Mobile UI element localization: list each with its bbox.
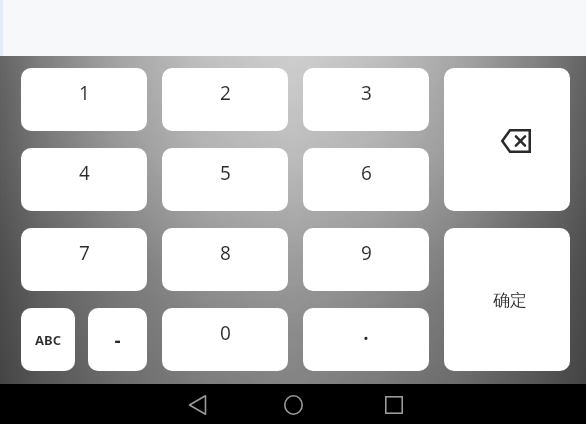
button[interactable]: 2	[162, 68, 288, 131]
button[interactable]: Back	[177, 393, 217, 417]
button[interactable]: 确定	[444, 228, 570, 371]
staticText: 4	[79, 160, 90, 186]
staticText: .	[363, 320, 369, 346]
staticText: 0	[220, 320, 231, 346]
button[interactable]: 6	[303, 148, 429, 211]
staticText: 3	[361, 80, 372, 106]
staticText: 7	[79, 240, 90, 266]
button[interactable]: Home	[273, 393, 313, 417]
button[interactable]: -	[88, 308, 147, 371]
staticText: 5	[220, 160, 231, 186]
button[interactable]: 1	[21, 68, 147, 131]
button[interactable]: 8	[162, 228, 288, 291]
button[interactable]: 0	[162, 308, 288, 371]
staticText: -	[114, 327, 121, 353]
staticText: 确定	[493, 290, 527, 311]
button[interactable]: 5	[162, 148, 288, 211]
button[interactable]: 4	[21, 148, 147, 211]
button[interactable]: 7	[21, 228, 147, 291]
staticText: 8	[220, 240, 231, 266]
button[interactable]: ABC	[21, 308, 75, 371]
button[interactable]: .	[303, 308, 429, 371]
staticText: 2	[220, 80, 231, 106]
button[interactable]: 9	[303, 228, 429, 291]
staticText: 9	[361, 240, 372, 266]
staticText: 6	[361, 160, 372, 186]
staticText: ABC	[35, 331, 61, 349]
button[interactable]: Recent apps	[374, 393, 414, 417]
button[interactable]: 3	[303, 68, 429, 131]
button[interactable]: Backspace	[444, 68, 570, 211]
staticText: 1	[79, 80, 90, 106]
